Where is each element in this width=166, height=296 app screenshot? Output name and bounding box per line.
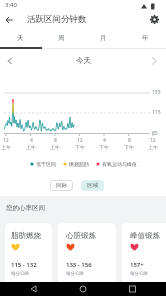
button[interactable]: 天 bbox=[0, 28, 41, 47]
button[interactable] bbox=[111, 282, 166, 296]
staticText: 年 bbox=[142, 34, 149, 42]
staticText: 您的心率区间 bbox=[6, 204, 45, 212]
button[interactable] bbox=[5, 56, 15, 66]
staticText: 下午 bbox=[99, 144, 109, 150]
staticText: 12 bbox=[3, 137, 9, 144]
staticText: 有氧运动与峰值 bbox=[102, 161, 137, 167]
button[interactable]: 峰值锻炼 bbox=[122, 223, 166, 285]
button[interactable]: 区域 bbox=[81, 180, 104, 191]
staticText: 每分心跳 bbox=[130, 271, 148, 277]
staticText: 4 bbox=[30, 137, 33, 144]
staticText: 天 bbox=[17, 34, 24, 42]
staticText: 155 bbox=[152, 89, 161, 96]
staticText: 3:40 bbox=[5, 1, 17, 9]
staticText: 目标 bbox=[56, 182, 67, 189]
staticText: 今天 bbox=[76, 56, 91, 65]
button[interactable]: 月 bbox=[82, 28, 124, 47]
staticText: 12 bbox=[150, 137, 156, 144]
staticText: 周 bbox=[58, 34, 65, 42]
staticText: 12 bbox=[77, 137, 83, 144]
staticText: 低于区间 bbox=[36, 161, 56, 167]
staticText: 燃烧脂肪 bbox=[69, 161, 89, 167]
staticText: 上午 bbox=[50, 144, 60, 150]
staticText: 下午 bbox=[124, 144, 134, 150]
staticText: 115 - 132 bbox=[11, 261, 37, 269]
button[interactable]: 目标 bbox=[50, 180, 73, 191]
button[interactable] bbox=[148, 55, 160, 67]
staticText: 脂肪燃烧 bbox=[11, 231, 41, 240]
button[interactable] bbox=[56, 282, 111, 296]
button[interactable]: 心脏锻炼 bbox=[58, 223, 116, 285]
staticText: 8 bbox=[54, 137, 57, 144]
staticText: 峰值锻炼 bbox=[130, 231, 160, 240]
staticText: 心脏锻炼 bbox=[66, 231, 96, 240]
staticText: 上午 bbox=[1, 144, 11, 150]
button[interactable]: 脂肪燃烧 bbox=[5, 223, 52, 285]
staticText: 115 bbox=[152, 109, 161, 116]
staticText: 活跃区间分钟数 bbox=[27, 14, 87, 25]
staticText: 每分心跳 bbox=[11, 271, 29, 277]
staticText: 133 - 156 bbox=[66, 261, 92, 269]
button[interactable] bbox=[149, 14, 160, 25]
button[interactable] bbox=[0, 282, 56, 296]
staticText: 上午 bbox=[148, 144, 158, 150]
staticText: 上午 bbox=[26, 144, 36, 150]
staticText: 157+ bbox=[130, 261, 144, 269]
staticText: 区域 bbox=[87, 182, 98, 189]
staticText: 4 bbox=[103, 137, 106, 144]
staticText: 8 bbox=[128, 137, 131, 144]
button[interactable]: 周 bbox=[41, 28, 82, 47]
button[interactable]: 年 bbox=[124, 28, 166, 47]
staticText: 下午 bbox=[75, 144, 85, 150]
button[interactable] bbox=[3, 14, 15, 26]
staticText: 每分心跳 bbox=[66, 271, 84, 277]
staticText: 85 bbox=[152, 130, 158, 137]
staticText: 月 bbox=[100, 34, 107, 42]
